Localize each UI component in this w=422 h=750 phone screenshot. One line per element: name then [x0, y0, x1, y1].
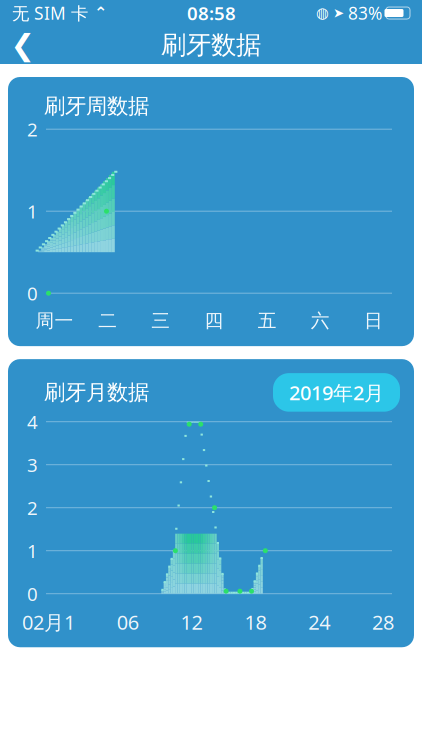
staticText: 刷牙数据	[161, 29, 261, 60]
staticText: 三	[151, 309, 170, 332]
staticText: 刷牙周数据	[44, 93, 149, 119]
staticText: 二	[98, 309, 117, 332]
staticText: 3	[27, 452, 38, 477]
staticText: 五	[258, 309, 277, 332]
staticText: 1	[27, 199, 38, 224]
staticText: 六	[311, 309, 330, 332]
staticText: 四	[204, 309, 223, 332]
staticText: ⌃	[88, 4, 107, 22]
staticText: 06	[117, 609, 139, 635]
staticText: 02月1	[22, 609, 75, 635]
staticText: 2	[27, 117, 38, 142]
staticText: 1	[27, 538, 38, 563]
staticText: ◍	[316, 5, 329, 21]
staticText: 刷牙月数据	[44, 379, 149, 405]
staticText: 12	[181, 609, 203, 635]
button[interactable]: 返回	[0, 26, 46, 64]
staticText: 2019年2月	[289, 379, 384, 406]
staticText: 无 SIM 卡	[12, 1, 88, 24]
staticText: 日	[364, 309, 383, 332]
staticText: ➤	[333, 5, 344, 20]
staticText: 28	[372, 609, 394, 635]
staticText: 0	[27, 281, 38, 306]
staticText: 0	[27, 581, 38, 606]
staticText: ❮	[10, 28, 35, 62]
button[interactable]: 2019年2月	[273, 373, 400, 412]
staticText: 4	[27, 409, 38, 434]
staticText: 08:58	[187, 1, 236, 25]
staticText: 24	[308, 609, 330, 635]
staticText: 18	[244, 609, 266, 635]
staticText: 周一	[36, 309, 74, 332]
staticText: 83%	[348, 1, 382, 24]
staticText: 2	[27, 495, 38, 520]
